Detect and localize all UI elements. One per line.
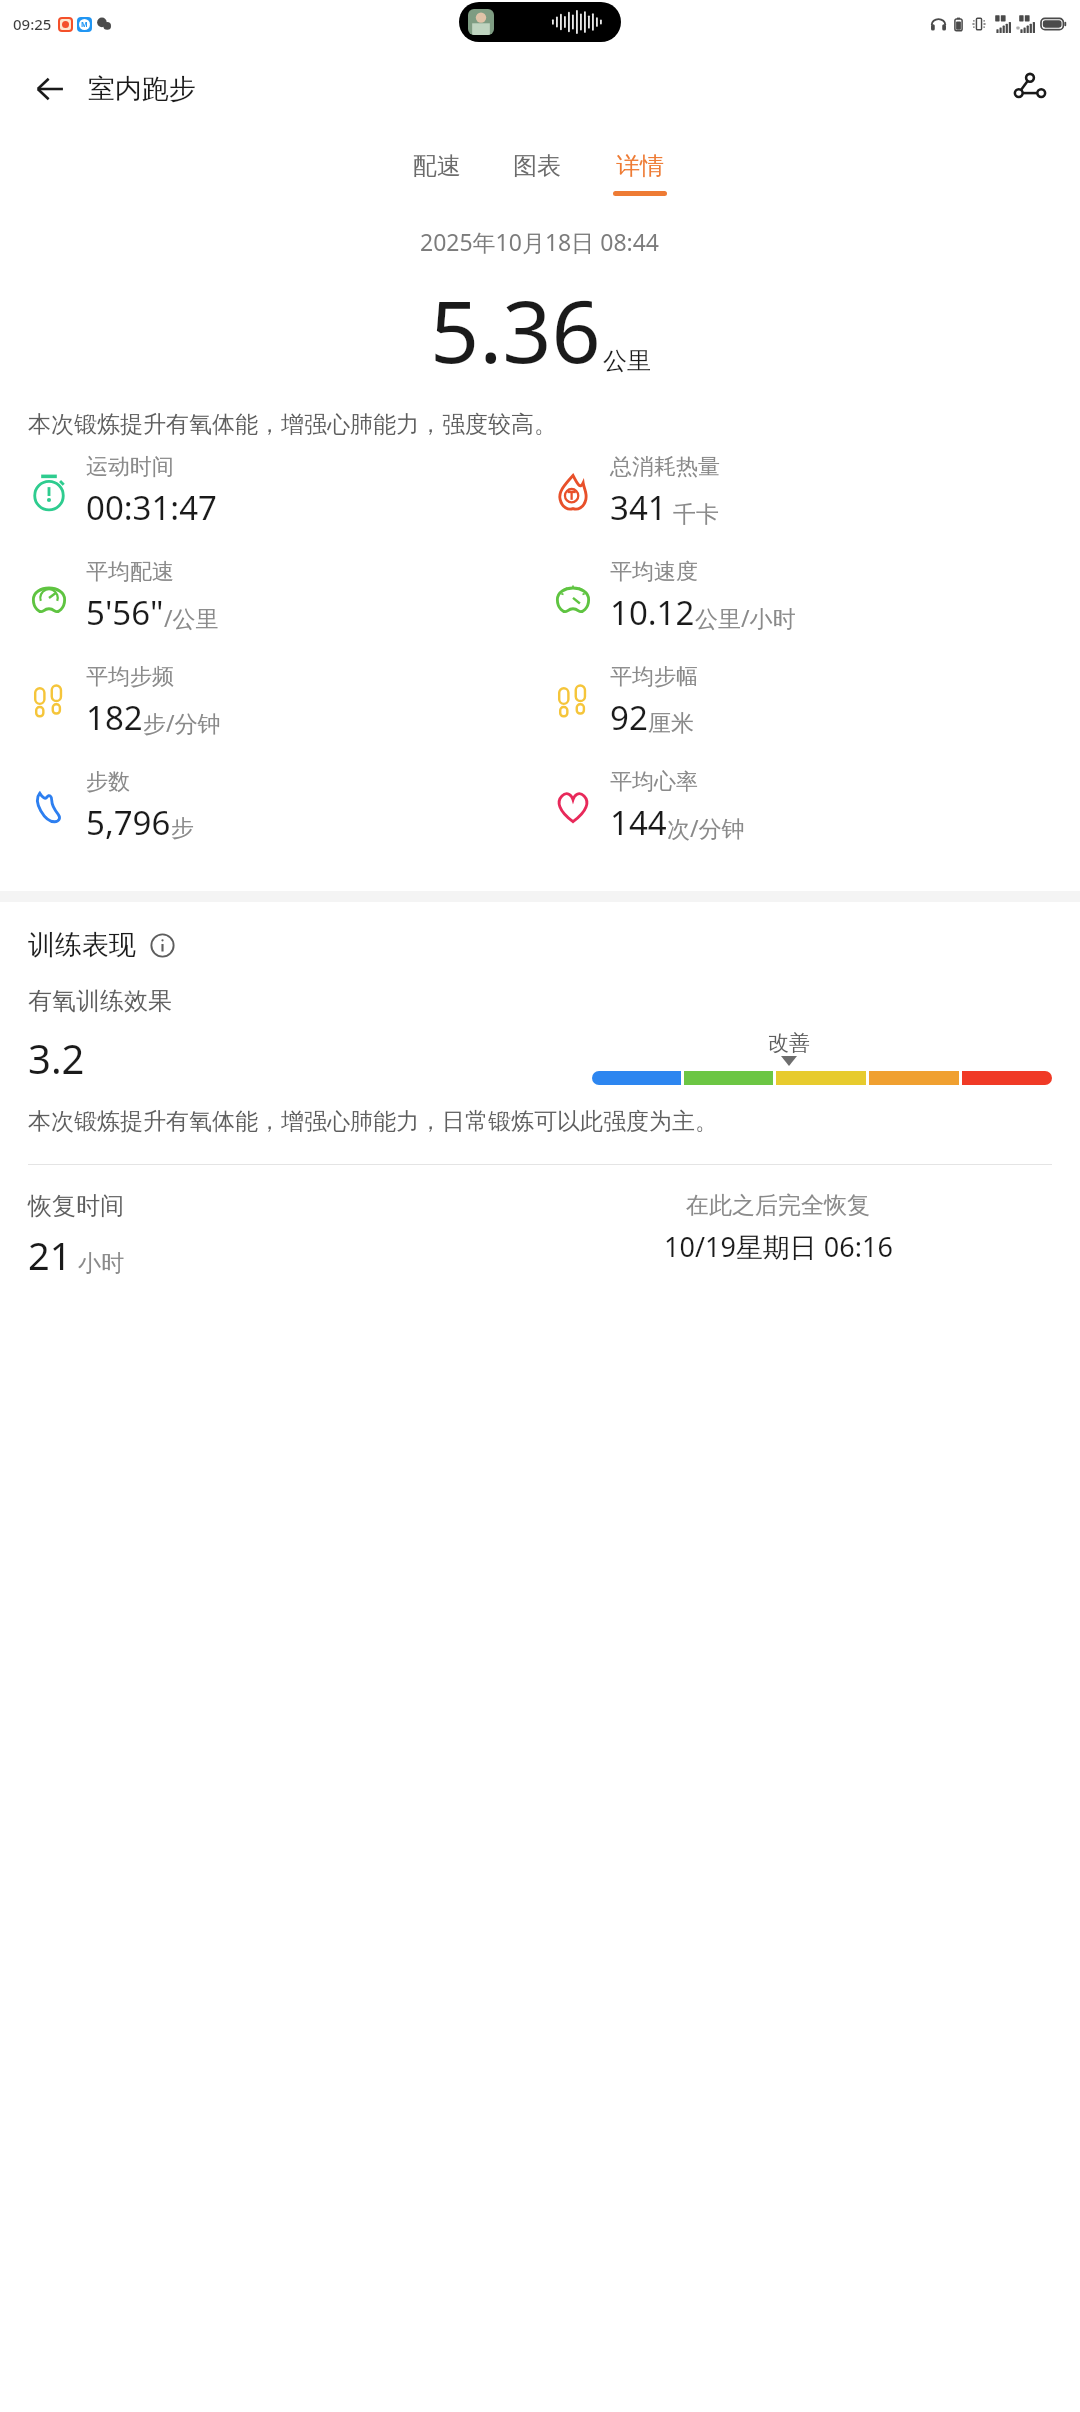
staticText: 改善 [768,1030,810,1056]
button[interactable]: 平均速度 [550,558,1080,635]
staticText: 5'56" [86,590,164,635]
staticText: 训练表现 [28,928,136,962]
staticText: 公里 [603,346,651,376]
button[interactable]: 平均配速 [26,558,540,635]
staticText: 次/分钟 [667,812,745,843]
button[interactable]: 平均步频 [26,663,540,740]
button[interactable]: 步数 [26,768,540,845]
staticText: 千卡 [667,497,719,528]
staticText: 21 [28,1229,72,1281]
button[interactable]: 运动时间 [26,453,540,530]
staticText: 平均速度 [610,558,698,586]
button[interactable]: 平均心率 [550,768,1080,845]
staticText: 5.36 [430,271,601,388]
button[interactable]: 平均步幅 [550,663,1080,740]
staticText: M [81,20,88,30]
staticText: 恢复时间 [28,1191,124,1221]
staticText: 2025年10月18日 08:44 [420,226,660,257]
staticText: /公里 [164,602,219,633]
staticText: 步数 [86,768,130,796]
staticText: 总消耗热量 [610,453,720,481]
staticText: 144 [610,800,667,845]
staticText: 3.2 [28,1031,85,1085]
staticText: 5,796 [86,800,171,845]
button[interactable]: 图表 [509,149,565,198]
staticText: 00:31:47 [86,485,217,530]
button[interactable]: 配速 [409,149,465,198]
staticText: 本次锻炼提升有氧体能，增强心肺能力，强度较高。 [28,410,1052,439]
staticText: 92 [610,695,648,740]
button[interactable]: Back [26,65,74,113]
staticText: 182 [86,695,143,740]
staticText: 步 [171,814,194,843]
button[interactable]: Share [1006,65,1054,113]
staticText: 厘米 [648,709,694,738]
staticText: 有氧训练效果 [28,986,172,1016]
staticText: 室内跑步 [88,72,196,106]
button[interactable]: Info [146,929,178,961]
staticText: 公里/小时 [695,602,796,633]
staticText: 配速 [413,151,461,181]
staticText: 平均心率 [610,768,698,796]
staticText: 341 [610,485,667,530]
staticText: 09:25 [13,14,52,34]
button[interactable]: 总消耗热量 [550,453,1080,530]
button[interactable]: 详情 [609,149,671,198]
staticText: 详情 [616,151,664,181]
staticText: 图表 [513,151,561,181]
staticText: 平均步频 [86,663,174,691]
staticText: 平均步幅 [610,663,698,691]
staticText: 平均配速 [86,558,174,586]
staticText: 本次锻炼提升有氧体能，增强心肺能力，日常锻炼可以此强度为主。 [28,1107,718,1136]
staticText: 10/19星期日 06:16 [664,1228,893,1265]
staticText: 步/分钟 [143,707,221,738]
staticText: 小时 [78,1249,124,1278]
staticText: 10.12 [610,590,695,635]
staticText: 运动时间 [86,453,174,481]
staticText: 在此之后完全恢复 [686,1191,870,1220]
